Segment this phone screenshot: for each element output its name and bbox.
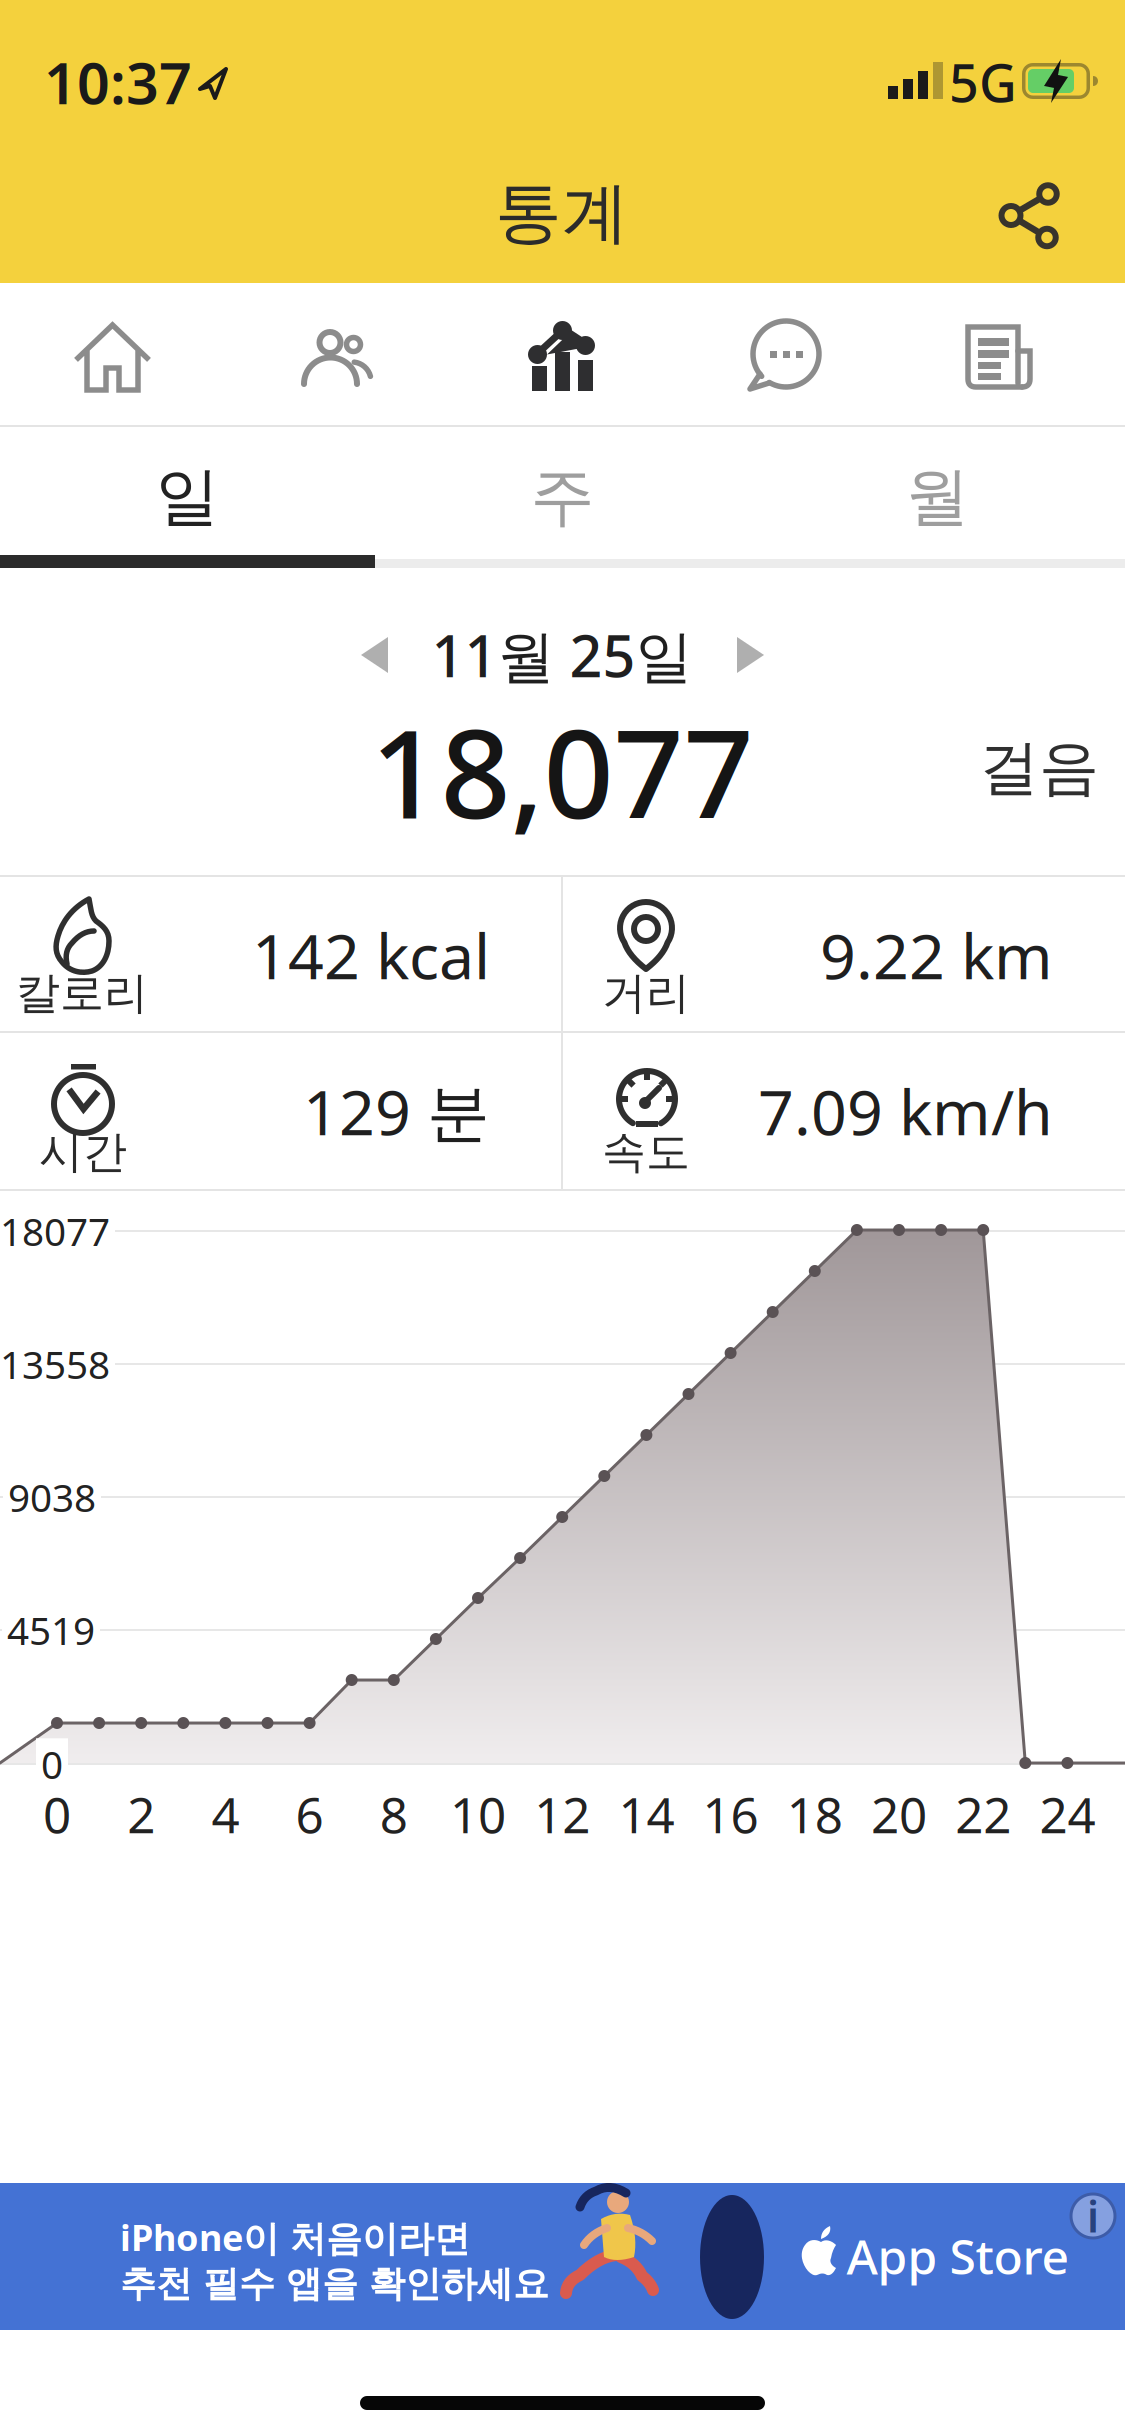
staticText: 칼로리 (16, 966, 148, 1020)
button[interactable]: 일 (0, 437, 375, 557)
staticText: iPhone이 처음이라면 (120, 2213, 470, 2261)
staticText: 월 (905, 458, 969, 536)
staticText: 2 (127, 1781, 155, 1847)
button[interactable]: Friends (225, 283, 450, 427)
staticText: 통계 (495, 172, 629, 254)
button[interactable]: 월 (750, 437, 1125, 557)
staticText: 20 (871, 1781, 927, 1847)
button[interactable]: Next day (708, 615, 792, 695)
staticText: 0 (41, 1738, 63, 1790)
button[interactable]: 주 (375, 437, 750, 557)
button[interactable]: Statistics (450, 283, 675, 427)
staticText: 0 (43, 1781, 71, 1847)
staticText: 주 (530, 458, 594, 536)
button[interactable]: Chat (675, 283, 900, 427)
staticText: 거리 (602, 966, 690, 1020)
staticText: 속도 (602, 1125, 690, 1179)
staticText: App Store (846, 2224, 1069, 2288)
staticText: 9.22 km (820, 913, 1053, 997)
button[interactable]: App Store ad (0, 2183, 1125, 2330)
staticText: 추천 필수 앱을 확인하세요 (120, 2262, 549, 2306)
button[interactable]: Previous day (333, 615, 417, 695)
button[interactable]: Home (0, 283, 225, 427)
staticText: 16 (703, 1781, 759, 1847)
button[interactable]: Share (976, 160, 1086, 270)
staticText: 10:37 (44, 44, 192, 120)
staticText: 12 (534, 1781, 590, 1847)
staticText: 10 (450, 1781, 506, 1847)
staticText: 9038 (8, 1471, 96, 1523)
staticText: 7.09 km/h (758, 1069, 1053, 1153)
staticText: 24 (1039, 1781, 1095, 1847)
staticText: i (1087, 2188, 1099, 2244)
staticText: 13558 (0, 1338, 110, 1390)
staticText: 18077 (0, 1205, 110, 1257)
staticText: 11월 25일 (431, 617, 692, 693)
staticText: 14 (618, 1781, 674, 1847)
staticText: 일 (155, 458, 219, 536)
staticText: 시간 (39, 1125, 127, 1179)
staticText: 8 (380, 1781, 408, 1847)
staticText: 18,077 (370, 690, 753, 852)
staticText: 6 (296, 1781, 324, 1847)
staticText: 4 (211, 1781, 239, 1847)
staticText: 22 (955, 1781, 1011, 1847)
staticText: 129 분 (303, 1069, 490, 1153)
staticText: 142 kcal (252, 913, 490, 997)
staticText: 5G (949, 47, 1017, 117)
button[interactable]: News (900, 283, 1125, 427)
staticText: 18 (787, 1781, 843, 1847)
staticText: 4519 (7, 1604, 95, 1656)
staticText: 걸음 (979, 731, 1099, 805)
